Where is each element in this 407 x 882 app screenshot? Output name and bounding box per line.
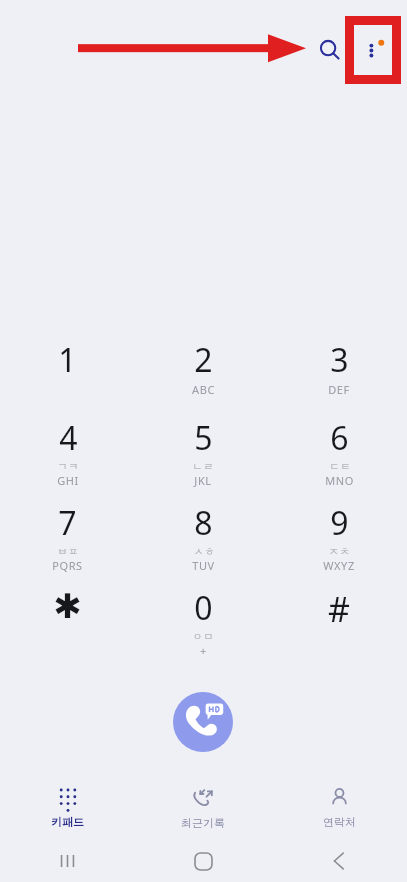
button[interactable]: 1 (0, 338, 135, 416)
staticText: 최근기록 (181, 816, 225, 830)
staticText: ㅂㅍ (57, 545, 79, 558)
staticText: MNO (325, 473, 354, 488)
button[interactable]: 2 (135, 338, 271, 416)
button[interactable]: 4 (0, 416, 135, 501)
button[interactable]: # (271, 586, 407, 666)
staticText: PQRS (52, 558, 83, 573)
staticText: ✱ (53, 586, 82, 626)
staticText: ㅈㅊ (328, 545, 350, 558)
staticText: ㅇㅁ (192, 630, 214, 643)
staticText: WXYZ (323, 558, 355, 573)
staticText: # (328, 586, 350, 632)
staticText: + (200, 643, 207, 658)
staticText: DEF (328, 382, 350, 397)
staticText: 연락처 (323, 815, 356, 829)
button[interactable]: 최근기록 (135, 778, 271, 838)
staticText: 1 (58, 338, 77, 382)
button[interactable]: 키패드 (0, 778, 135, 838)
button[interactable]: 7 (0, 501, 135, 586)
staticText: 5 (194, 416, 213, 460)
button[interactable]: More options (354, 30, 394, 70)
staticText: JKL (194, 473, 212, 488)
staticText: 0 (194, 586, 213, 630)
staticText: 2 (194, 338, 213, 382)
staticText: 키패드 (51, 815, 84, 829)
staticText: ㅅㅎ (193, 545, 215, 558)
button[interactable]: Back (271, 840, 407, 882)
button[interactable]: Recents (0, 840, 135, 882)
button[interactable]: 3 (271, 338, 407, 416)
button[interactable]: 9 (271, 501, 407, 586)
button[interactable]: 연락처 (271, 778, 407, 838)
button[interactable]: 0 (135, 586, 271, 666)
staticText: GHI (57, 473, 79, 488)
staticText: 8 (194, 501, 213, 545)
button[interactable]: Search (312, 32, 348, 68)
button[interactable]: 6 (271, 416, 407, 501)
staticText: ㄷㅌ (329, 460, 351, 473)
button[interactable]: 5 (135, 416, 271, 501)
button[interactable]: ✱ (0, 586, 135, 666)
staticText: 7 (58, 501, 77, 545)
staticText: ㄴㄹ (192, 460, 214, 473)
staticText: ㄱㅋ (57, 460, 79, 473)
staticText: 4 (59, 416, 78, 460)
button[interactable]: 8 (135, 501, 271, 586)
staticText: ABC (192, 382, 215, 397)
staticText: TUV (192, 558, 215, 573)
button[interactable]: Call (173, 692, 233, 752)
button[interactable]: Home (135, 840, 271, 882)
staticText: 6 (330, 416, 349, 460)
staticText: 3 (330, 338, 349, 382)
staticText: 9 (330, 501, 349, 545)
